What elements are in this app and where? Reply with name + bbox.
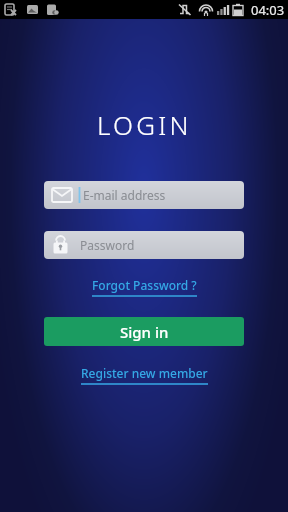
button[interactable]: Register new member [81, 365, 208, 385]
staticText: Forgot Password ? [92, 277, 197, 293]
button[interactable]: Sign in [44, 317, 244, 346]
button[interactable]: Forgot Password ? [92, 277, 197, 297]
button[interactable]: Password [44, 231, 244, 259]
staticText: Register new member [81, 365, 208, 381]
staticText: 04:03 [251, 1, 285, 19]
staticText: Password [80, 237, 135, 253]
staticText: Sign in [120, 322, 169, 342]
button[interactable]: E-mail address [44, 181, 244, 209]
staticText: LOGIN [97, 107, 192, 142]
staticText: E-mail address [83, 187, 166, 203]
